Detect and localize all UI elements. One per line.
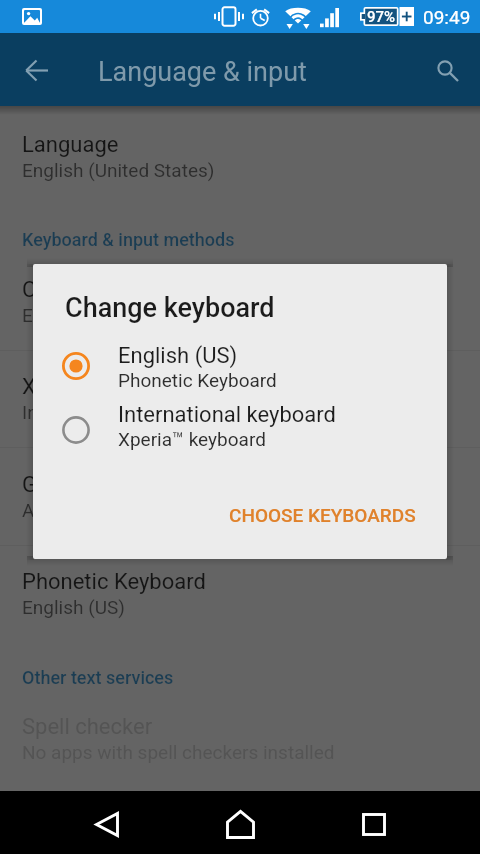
staticText: Keyboard & input methods [22, 229, 235, 250]
staticText: 97% [367, 8, 396, 26]
staticText: No apps with spell checkers installed [22, 741, 335, 763]
staticText: International keyboard [118, 402, 336, 428]
button[interactable]: Google voice typing [0, 472, 480, 521]
staticText: English (United States) [22, 159, 215, 181]
staticText: Language & input [98, 56, 307, 88]
button[interactable]: Spell checker [0, 714, 480, 763]
button[interactable]: English (US) [33, 337, 447, 395]
staticText: Language [22, 132, 119, 158]
staticText: Google voice typing [22, 472, 214, 498]
button[interactable]: Language [0, 132, 480, 181]
button[interactable]: Search [423, 49, 471, 97]
staticText: CHOOSE KEYBOARDS [229, 504, 416, 526]
button[interactable]: Recent apps [339, 793, 409, 854]
staticText: Phonetic Keyboard [22, 569, 206, 595]
button[interactable]: CHOOSE KEYBOARDS [209, 488, 447, 542]
button[interactable]: Back [72, 793, 142, 854]
button[interactable]: International keyboard [33, 401, 447, 459]
button[interactable]: Current keyboard [0, 277, 480, 326]
button[interactable]: Navigate up [13, 46, 61, 94]
staticText: Other text services [22, 667, 174, 688]
staticText: Xperia™ keyboard [118, 428, 266, 450]
staticText: 09:49 [423, 6, 471, 28]
staticText: Phonetic Keyboard [118, 369, 277, 391]
staticText: Xperia keyboard [22, 374, 180, 400]
button[interactable]: Home [205, 793, 275, 854]
button[interactable]: Phonetic Keyboard [0, 569, 480, 618]
staticText: Change keyboard [65, 292, 275, 324]
button[interactable]: Xperia keyboard [0, 374, 480, 423]
staticText: English (US) [22, 596, 125, 618]
staticText: Current keyboard [22, 277, 190, 303]
staticText: English (US) [118, 343, 238, 369]
staticText: International keyboard [22, 401, 211, 423]
staticText: English (US) - Phonetic Keyboard [22, 304, 299, 326]
staticText: Automatic [22, 499, 110, 521]
staticText: Spell checker [22, 714, 153, 740]
